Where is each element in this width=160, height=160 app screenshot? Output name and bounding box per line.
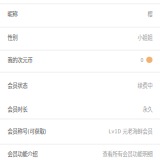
- button[interactable]: 会员状态: [0, 73, 160, 98]
- button[interactable]: 性别: [0, 28, 160, 49]
- button[interactable]: 会员时长: [0, 98, 160, 118]
- staticText: Lv1D 元老海鲜会员: [108, 127, 152, 135]
- button[interactable]: 会员称号(可获取): [0, 120, 160, 144]
- button[interactable]: 昵称: [0, 4, 160, 26]
- button[interactable]: 会员功能介绍: [0, 145, 160, 159]
- staticText: 0: [141, 56, 144, 64]
- staticText: 查看所有会员功能明细: [102, 150, 152, 158]
- staticText: 昵称: [7, 10, 17, 17]
- staticText: 性别: [7, 33, 17, 41]
- button[interactable]: 我的次元币: [0, 51, 160, 72]
- staticText: 樱: [147, 10, 152, 17]
- staticText: 我的次元币: [7, 56, 32, 64]
- staticText: 会员功能介绍: [7, 150, 37, 158]
- staticText: 会员状态: [7, 82, 27, 89]
- staticText: 会员称号(可获取): [7, 127, 46, 135]
- staticText: 小姐姐: [137, 33, 152, 41]
- staticText: 会员时长: [7, 105, 27, 113]
- staticText: 永久: [142, 105, 152, 113]
- staticText: 续费中: [137, 82, 152, 89]
